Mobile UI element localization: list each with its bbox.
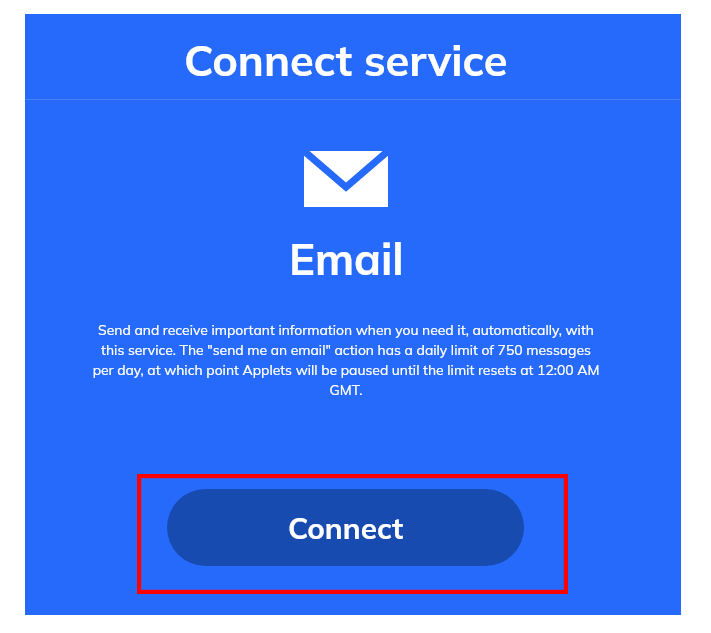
staticText: Send and receive important information w… <box>91 321 601 398</box>
staticText: Email <box>289 231 404 286</box>
button[interactable]: Connect <box>167 489 524 566</box>
staticText: Connect service <box>184 32 508 86</box>
staticText: Connect <box>288 509 404 546</box>
other: Email icon <box>304 151 388 207</box>
